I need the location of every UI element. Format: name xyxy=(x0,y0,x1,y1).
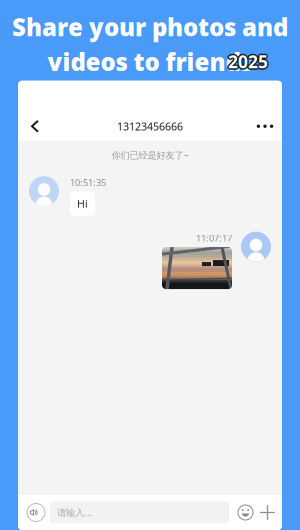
staticText: 你们已经是好友了~ xyxy=(111,149,188,161)
button[interactable]: Voice message xyxy=(27,503,45,521)
button[interactable]: Emoji xyxy=(238,505,253,520)
button[interactable]: Back xyxy=(24,118,46,134)
staticText: videos to friends xyxy=(47,46,252,78)
staticText: 2025 xyxy=(226,50,266,73)
staticText: Share your photos and xyxy=(12,11,288,43)
button[interactable]: More xyxy=(254,118,276,134)
staticText: 2025 xyxy=(229,50,269,73)
staticText: 2025 xyxy=(228,51,268,74)
staticText: Hi xyxy=(77,196,88,211)
staticText: 2025 xyxy=(228,48,268,71)
staticText: 请输入... xyxy=(57,506,93,519)
staticText: 13123456666 xyxy=(117,119,183,133)
staticText: 10:51:35 xyxy=(70,176,106,188)
staticText: 2025 xyxy=(227,49,267,72)
button[interactable]: 请输入... xyxy=(50,501,229,523)
staticText: 2025 xyxy=(229,51,269,74)
staticText: 2025 xyxy=(228,50,268,73)
button[interactable]: More options xyxy=(260,505,275,520)
staticText: 11:07:17 xyxy=(196,232,232,244)
staticText: 2025 xyxy=(229,49,269,72)
staticText: 2025 xyxy=(227,51,267,74)
